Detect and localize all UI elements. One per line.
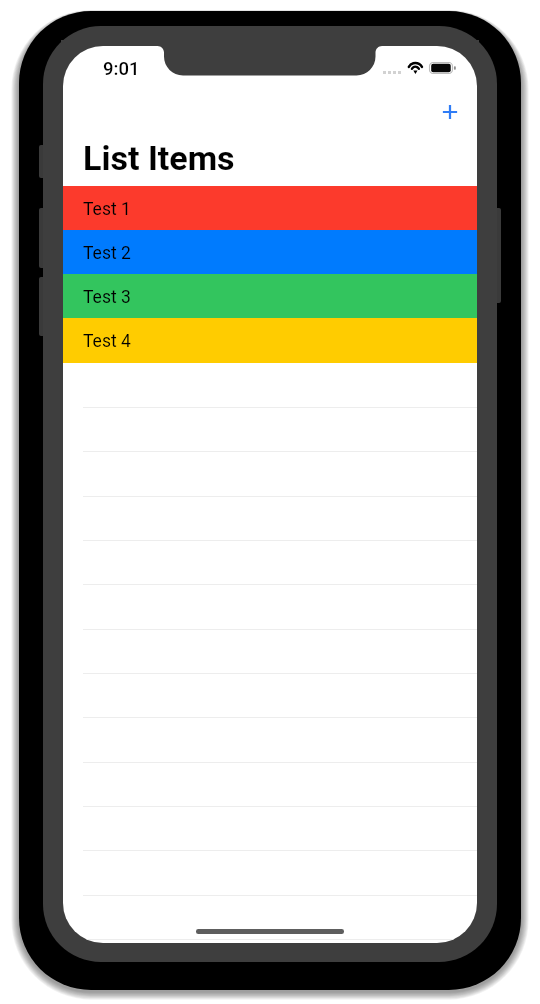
staticText: Test 2 [83, 243, 131, 264]
button[interactable]: Test 3 [63, 274, 477, 319]
staticText: List Items [83, 138, 235, 178]
button[interactable]: Test 4 [63, 318, 477, 363]
staticText: 9:01 [103, 58, 140, 80]
staticText: Test 1 [83, 199, 131, 220]
button[interactable]: Test 2 [63, 230, 477, 275]
button[interactable] [63, 895, 477, 939]
staticText: Test 3 [83, 287, 131, 308]
button[interactable]: Test 1 [63, 186, 477, 231]
staticText: Test 4 [83, 331, 131, 352]
button[interactable]: Add item [434, 96, 466, 128]
